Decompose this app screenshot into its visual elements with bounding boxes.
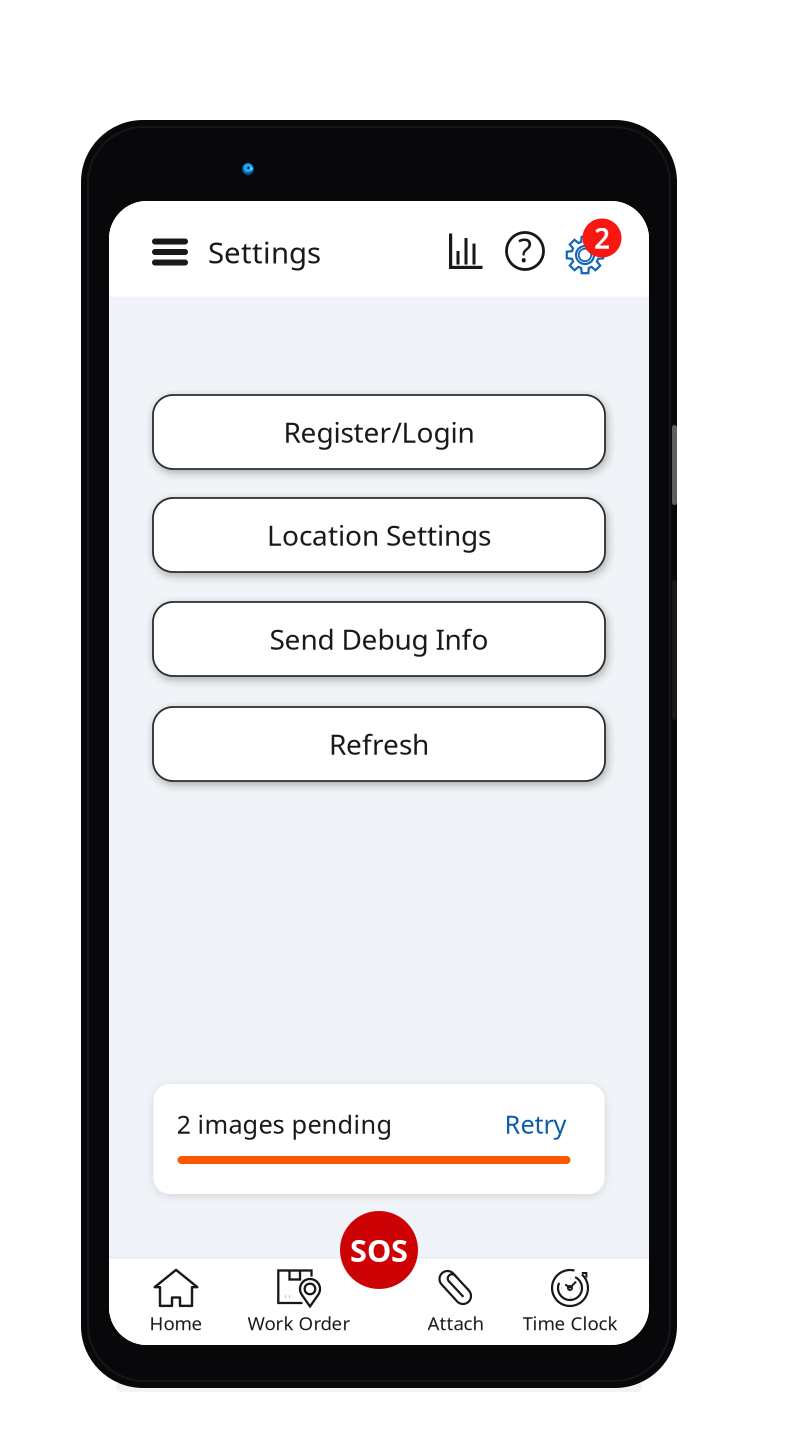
staticText: Register/Login (283, 413, 474, 451)
button[interactable]: SOS (340, 1211, 418, 1289)
button[interactable]: Settings (553, 210, 613, 266)
button[interactable]: Help (499, 225, 551, 277)
staticText: 2 (594, 219, 610, 257)
button[interactable]: Reports (440, 225, 492, 277)
button[interactable]: Refresh (153, 707, 605, 781)
staticText: Attach (427, 1311, 484, 1335)
staticText: Work Order (247, 1311, 350, 1335)
button[interactable]: Menu (141, 226, 199, 278)
button[interactable]: Work Order (234, 1265, 364, 1343)
staticText: SOS (350, 1230, 408, 1270)
staticText: Home (149, 1311, 202, 1335)
staticText: ? (518, 229, 532, 271)
staticText: Settings (208, 232, 321, 271)
button[interactable]: Home (111, 1265, 241, 1343)
button[interactable]: Location Settings (153, 498, 605, 572)
staticText: Location Settings (267, 516, 491, 554)
button[interactable]: Time Clock (505, 1265, 635, 1343)
button[interactable]: Send Debug Info (153, 602, 605, 676)
staticText: 2 images pending (176, 1107, 392, 1141)
button[interactable]: Attach (391, 1265, 521, 1343)
staticText: Retry (504, 1107, 566, 1141)
button[interactable]: Register/Login (153, 395, 605, 469)
staticText: Send Debug Info (269, 620, 488, 658)
button[interactable]: Retry (496, 1107, 566, 1141)
staticText: Refresh (329, 725, 429, 763)
staticText: Time Clock (522, 1311, 617, 1335)
